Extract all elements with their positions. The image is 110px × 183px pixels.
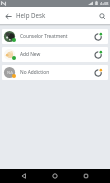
staticText: NA xyxy=(7,70,13,76)
button[interactable]: Recents xyxy=(79,169,93,183)
button[interactable]: Search xyxy=(94,8,110,24)
staticText: Help Desk xyxy=(16,11,46,19)
button[interactable]: Back xyxy=(17,169,31,183)
button[interactable]: Add New xyxy=(2,47,108,62)
staticText: No Addiction xyxy=(20,69,50,76)
button[interactable]: NA xyxy=(2,65,108,80)
staticText: Add New xyxy=(20,51,41,58)
button[interactable]: Home xyxy=(48,169,62,183)
staticText: 4:48 xyxy=(100,1,109,7)
button[interactable]: Counselor Treatment xyxy=(2,29,108,44)
button[interactable]: Refresh xyxy=(93,31,104,42)
button[interactable]: Refresh xyxy=(93,49,104,60)
staticText: Counselor Treatment xyxy=(20,33,68,40)
button[interactable]: Refresh xyxy=(93,67,104,78)
button[interactable]: Back xyxy=(0,8,16,24)
